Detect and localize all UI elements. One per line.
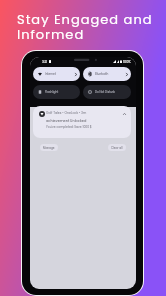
staticText: You've completed: Save 1000 $ <box>46 125 92 129</box>
staticText: Stay Engaged and Informed <box>17 10 153 43</box>
button[interactable]: Do Not Disturb <box>83 85 131 99</box>
staticText: Do Not Disturb <box>95 90 115 94</box>
button[interactable]: Manage <box>40 144 58 151</box>
button[interactable]: Golf Tales • OneLock • 3m <box>33 106 131 138</box>
staticText: Manage <box>43 146 55 150</box>
staticText: Internet <box>45 72 56 76</box>
staticText: Bluetooth <box>95 72 109 76</box>
button[interactable]: Bluetooth <box>83 67 131 81</box>
button[interactable]: Clear all <box>108 144 126 151</box>
staticText: Clear all <box>111 146 123 150</box>
staticText: achievement Unlocked <box>46 118 87 123</box>
button[interactable]: Collapse notification <box>121 111 127 117</box>
button[interactable]: Flashlight <box>33 85 80 99</box>
button[interactable]: Internet <box>33 67 80 81</box>
staticText: 100% <box>123 59 131 64</box>
staticText: Golf Tales • OneLock • 3m <box>46 111 87 115</box>
staticText: 3:21 <box>42 60 48 64</box>
staticText: Flashlight <box>45 90 59 94</box>
